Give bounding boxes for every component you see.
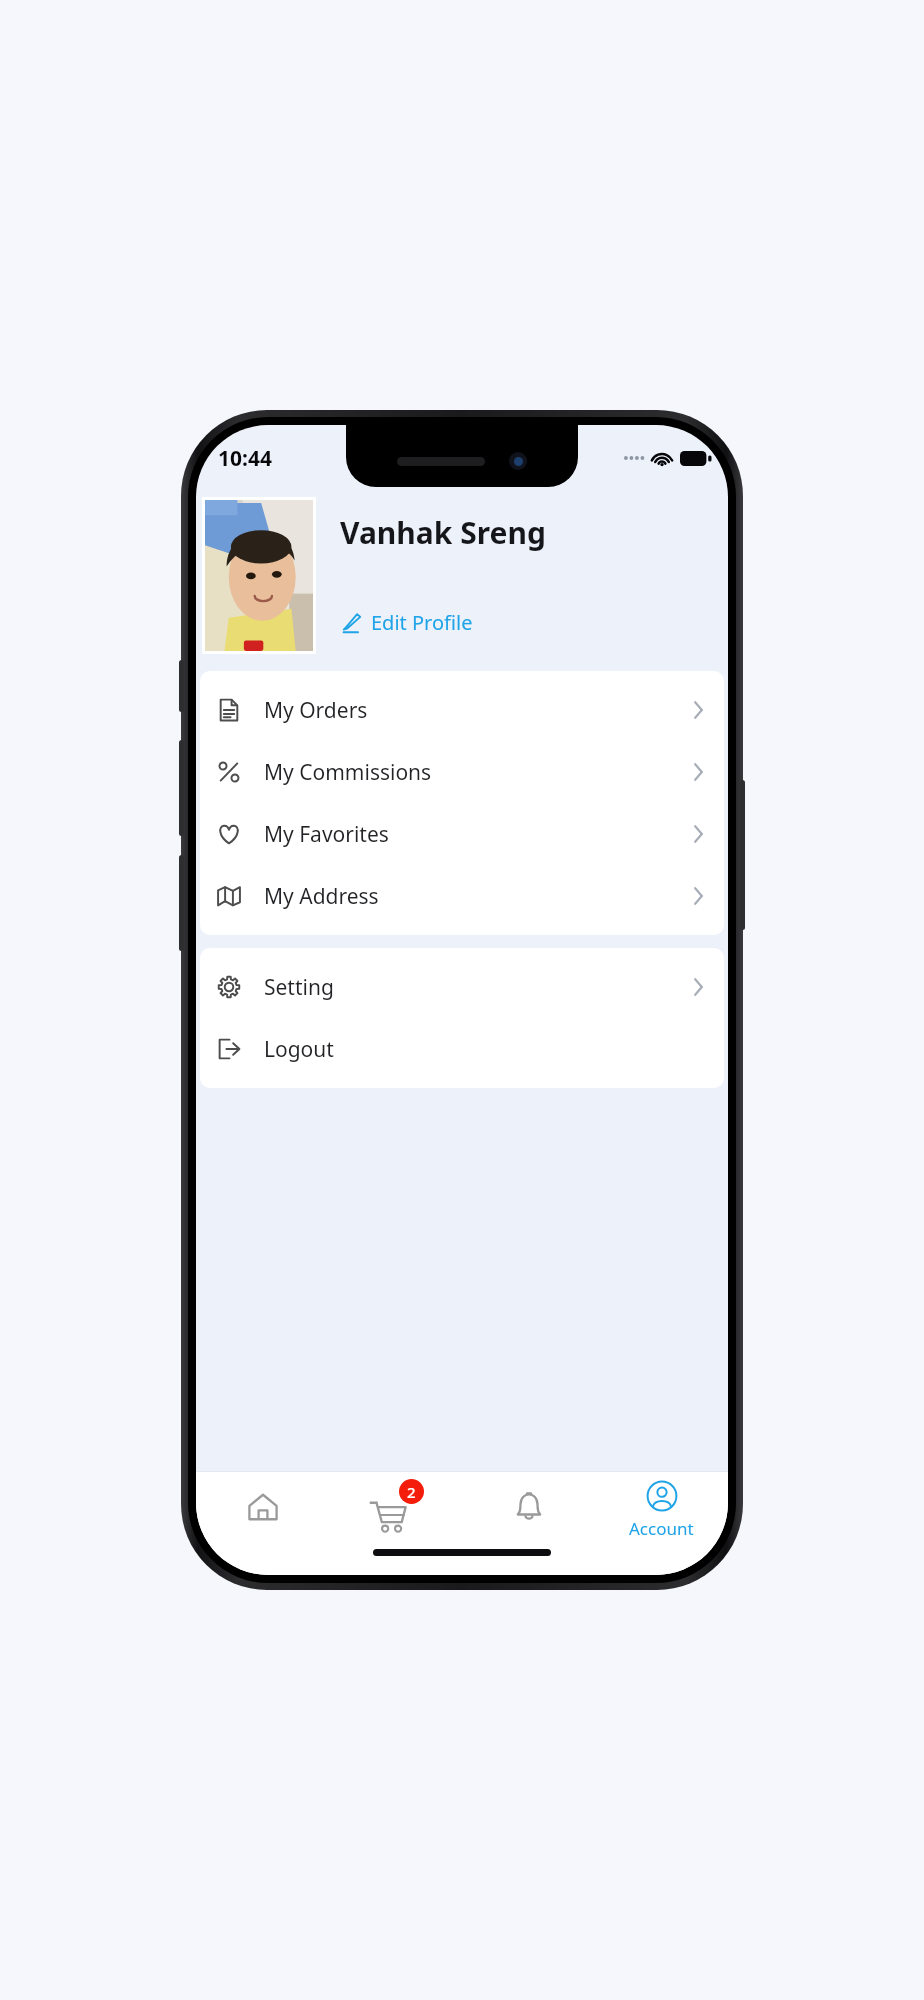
button[interactable]: Home xyxy=(196,1471,329,1549)
button[interactable]: My Commissions xyxy=(200,741,724,803)
button[interactable]: My Address xyxy=(200,865,724,927)
button[interactable]: Cart, 2 items xyxy=(329,1471,462,1549)
staticText: My Address xyxy=(264,882,379,911)
button[interactable]: Notifications xyxy=(462,1471,595,1549)
button[interactable]: My Favorites xyxy=(200,803,724,865)
staticText: My Favorites xyxy=(264,820,389,849)
staticText: 10:44 xyxy=(218,444,272,473)
staticText: My Commissions xyxy=(264,758,432,787)
button[interactable]: Setting xyxy=(200,956,724,1018)
staticText: Edit Profile xyxy=(371,609,473,636)
button[interactable]: Edit Profile xyxy=(340,605,479,646)
staticText: My Orders xyxy=(264,696,368,725)
button[interactable]: Logout xyxy=(200,1018,724,1080)
staticText: Setting xyxy=(264,973,334,1002)
staticText: 2 xyxy=(407,1482,416,1502)
button[interactable]: Account xyxy=(595,1471,728,1549)
staticText: Vanhak Sreng xyxy=(340,512,546,553)
staticText: Logout xyxy=(264,1035,334,1064)
button[interactable]: My Orders xyxy=(200,679,724,741)
staticText: Account xyxy=(629,1517,694,1540)
